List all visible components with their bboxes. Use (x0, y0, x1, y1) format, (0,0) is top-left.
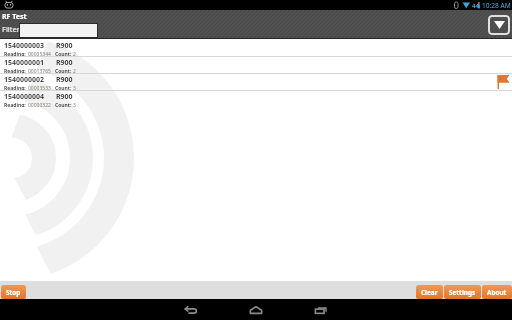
button[interactable]: 1540000004 (0, 91, 512, 107)
staticText: Reading: (4, 68, 28, 73)
staticText: 1540000003 (4, 41, 45, 51)
staticText: 00013765 (28, 68, 51, 73)
button[interactable]: Stop (1, 285, 26, 299)
staticText: Reading: (4, 102, 28, 107)
staticText: 1540000004 (4, 92, 45, 102)
staticText: Reading: (4, 85, 28, 90)
staticText: Count: (55, 68, 73, 73)
button[interactable]: Dropdown (488, 15, 510, 35)
button[interactable]: Settings (444, 285, 481, 299)
staticText: Stop (6, 288, 21, 297)
staticText: RF Test (2, 12, 27, 22)
staticText: R900 (56, 75, 73, 85)
button[interactable]: Back (158, 299, 223, 320)
button[interactable]: Recents (288, 299, 353, 320)
staticText: Clear (421, 288, 438, 297)
button[interactable]: About (482, 285, 512, 299)
staticText: About (487, 288, 507, 297)
staticText: 3 (73, 85, 76, 90)
staticText: 1540000001 (4, 58, 45, 68)
staticText: Filter (2, 24, 20, 34)
staticText: 00005344 (28, 51, 51, 56)
staticText: 2 (73, 51, 76, 56)
staticText: Reading: (4, 51, 28, 56)
staticText: 44 (472, 2, 479, 10)
staticText: Count: (55, 102, 73, 107)
staticText: 2 (73, 68, 76, 73)
button[interactable]: Clear (416, 285, 443, 299)
staticText: Count: (55, 51, 73, 56)
staticText: R900 (56, 58, 73, 68)
staticText: 10:28 AM (482, 1, 511, 10)
button[interactable]: 1540000001 (0, 57, 512, 74)
staticText: 1540000002 (4, 75, 45, 85)
button[interactable]: 1540000003 (0, 40, 512, 57)
staticText: 00000322 (28, 102, 51, 107)
staticText: Count: (55, 85, 73, 90)
button[interactable]: 1540000002 (0, 74, 512, 91)
staticText: R900 (56, 41, 73, 51)
staticText: 3 (73, 102, 76, 107)
other: Flagged (494, 74, 510, 90)
staticText: Settings (449, 288, 476, 297)
staticText: 00003533 (28, 85, 51, 90)
button[interactable]: Home (223, 299, 288, 320)
staticText: R900 (56, 92, 73, 102)
